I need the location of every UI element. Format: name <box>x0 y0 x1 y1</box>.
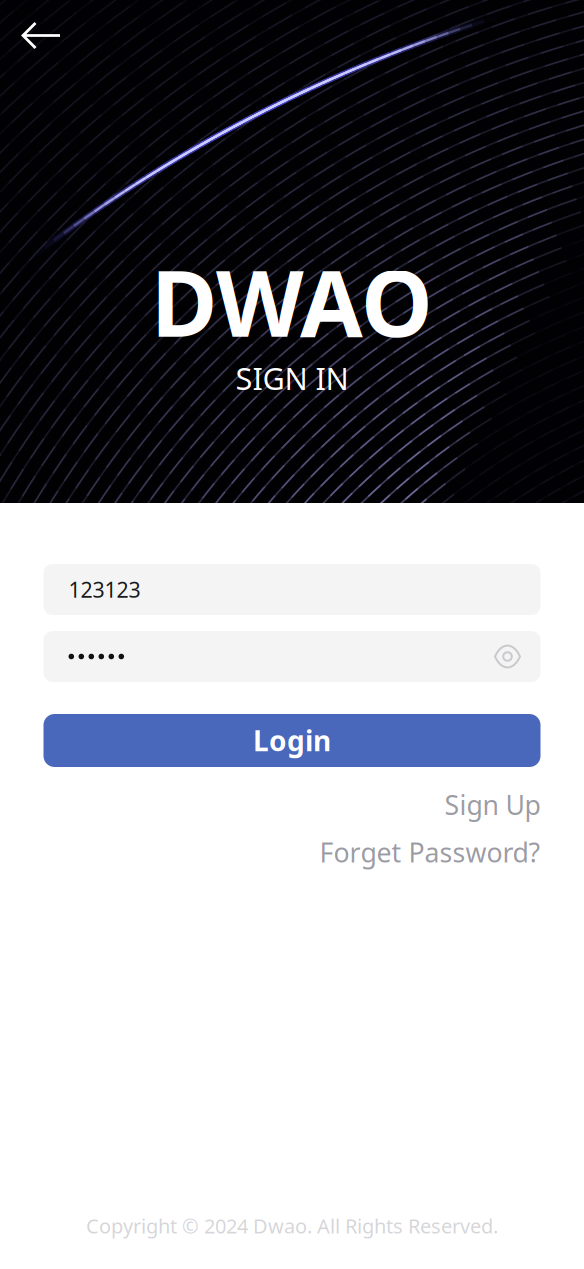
staticText: 123123 <box>68 575 140 604</box>
button[interactable]: Back <box>0 0 76 65</box>
staticText: Forget Password? <box>319 834 540 870</box>
button[interactable]: Forget Password? <box>319 834 540 870</box>
button[interactable]: Login <box>43 714 540 767</box>
staticText: Login <box>253 722 331 759</box>
staticText: DWAO <box>151 241 433 362</box>
staticText: Sign Up <box>444 787 540 822</box>
staticText: SIGN IN <box>235 358 348 398</box>
button[interactable]: Sign Up <box>444 787 540 822</box>
button[interactable]: Show password <box>492 644 522 668</box>
staticText: Copyright © 2024 Dwao. All Rights Reserv… <box>86 1212 498 1239</box>
